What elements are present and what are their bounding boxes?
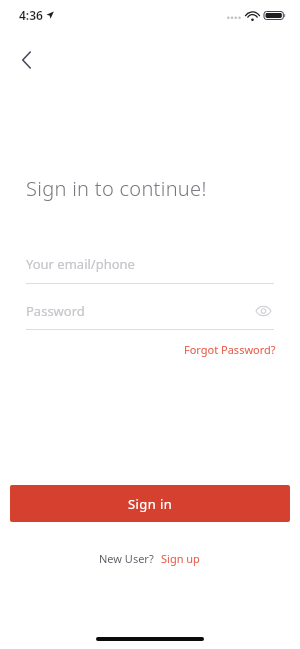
button[interactable]: Password <box>26 300 274 322</box>
staticText: Password <box>26 302 85 320</box>
staticText: New User? <box>99 551 154 566</box>
staticText: Your email/phone <box>26 255 135 273</box>
button[interactable]: Sign up <box>159 548 202 569</box>
staticText: Sign in <box>128 495 173 513</box>
staticText: Forgot Password? <box>184 342 276 357</box>
staticText: Sign in to continue! <box>26 175 207 202</box>
button[interactable]: Your email/phone <box>26 255 274 284</box>
button[interactable]: Forgot Password? <box>184 338 300 361</box>
button[interactable]: Show password <box>252 300 274 322</box>
staticText: 4:36 <box>19 7 43 23</box>
staticText: Sign up <box>161 551 200 566</box>
button[interactable]: Back <box>6 40 46 80</box>
button[interactable]: Sign in <box>10 485 290 522</box>
